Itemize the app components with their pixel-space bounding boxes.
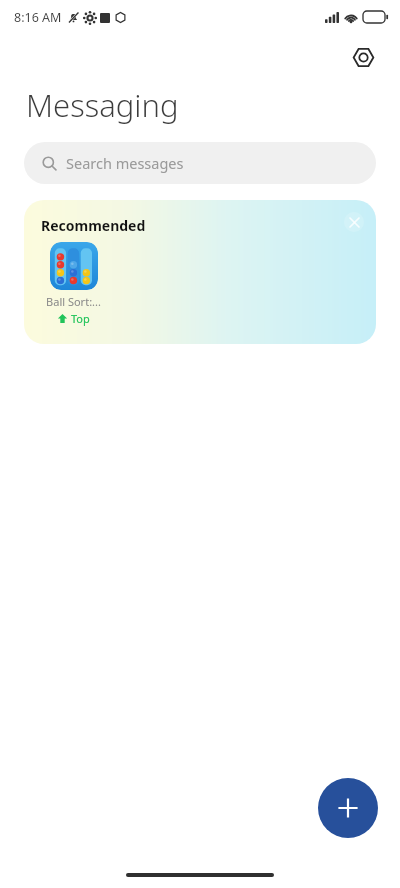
staticText: Ball Sort:... — [46, 294, 101, 309]
staticText: Messaging — [26, 84, 179, 126]
button[interactable]: Dismiss recommendation — [344, 212, 364, 232]
button[interactable]: Settings — [344, 38, 382, 76]
staticText: 8:16 AM — [14, 9, 62, 26]
staticText: Recommended — [41, 216, 146, 235]
button[interactable] — [50, 242, 98, 290]
button[interactable]: Search messages — [24, 142, 376, 184]
staticText: Top — [71, 311, 90, 326]
staticText: Search messages — [66, 153, 184, 173]
button[interactable]: Recommended — [24, 200, 376, 344]
button[interactable]: New message — [318, 778, 378, 838]
